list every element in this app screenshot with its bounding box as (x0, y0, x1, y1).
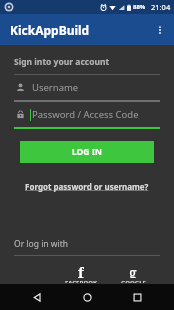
button[interactable]: Password / Access Code (14, 102, 160, 127)
staticText: Sign into your account (14, 56, 110, 68)
staticText: KickAppBuild (10, 22, 90, 38)
staticText: Username (32, 81, 79, 94)
staticText: 21:04 (151, 2, 171, 12)
staticText: 88% (133, 3, 146, 11)
staticText: Password / Access Code (32, 108, 139, 121)
button[interactable]: f (62, 262, 100, 284)
staticText: f (78, 263, 84, 278)
button[interactable]: Recents (124, 284, 150, 310)
button[interactable]: Username (14, 75, 160, 100)
button[interactable]: LOG IN (20, 141, 154, 163)
staticText: LOG IN (72, 146, 102, 158)
staticText: g (129, 263, 137, 278)
button[interactable]: Back (24, 284, 50, 310)
staticText: FACEBOOK (65, 279, 97, 283)
button[interactable]: g (114, 262, 152, 284)
button[interactable]: More options (146, 16, 174, 44)
staticText: Or log in with (14, 238, 68, 250)
button[interactable]: Forgot password or username? (22, 178, 152, 195)
staticText: GOOGLE (121, 279, 146, 283)
button[interactable]: Home (74, 284, 100, 310)
